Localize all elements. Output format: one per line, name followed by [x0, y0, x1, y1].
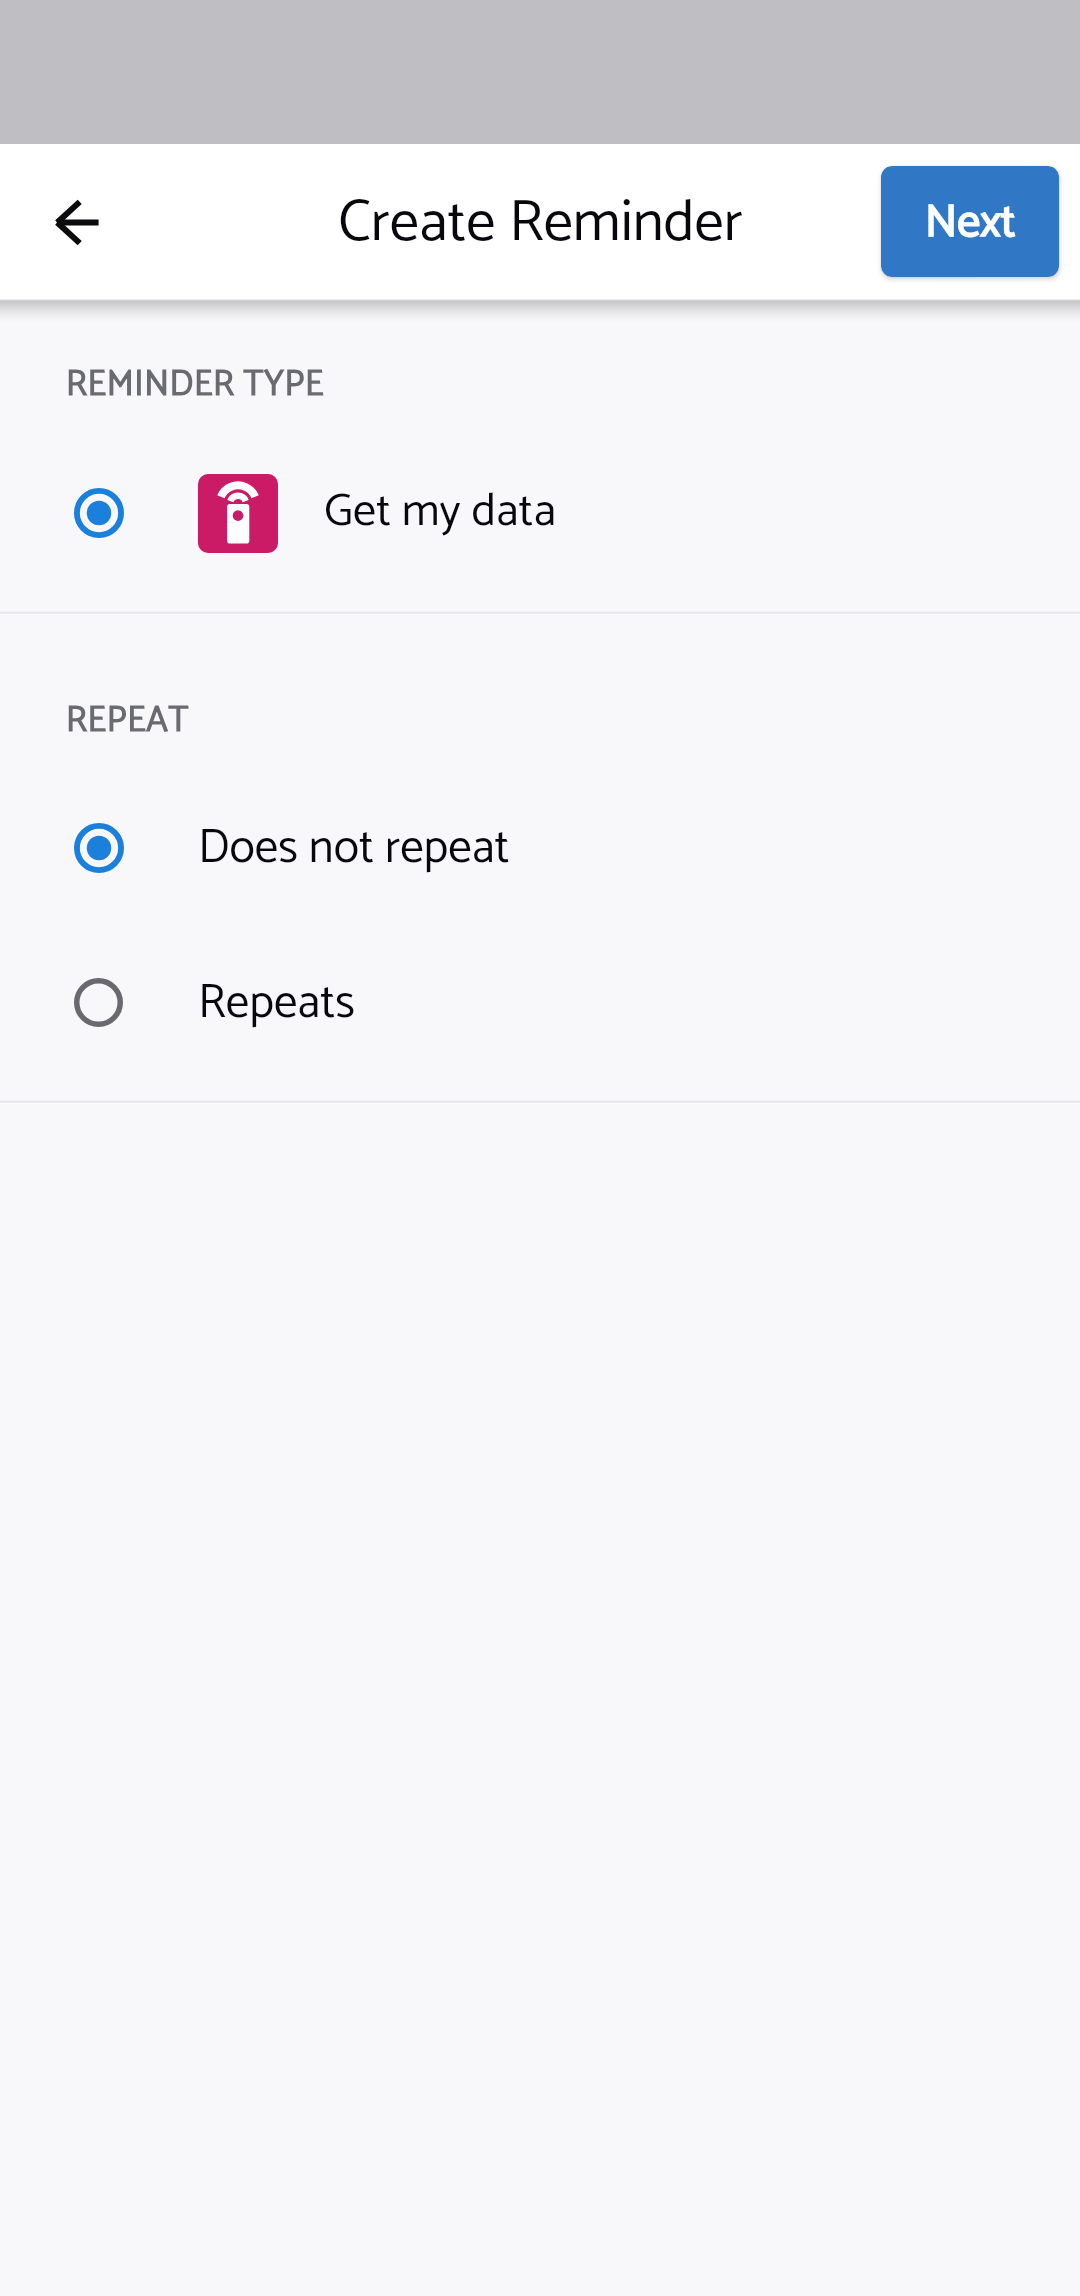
- button[interactable]: Back: [29, 174, 125, 270]
- staticText: Does not repeat: [198, 810, 510, 887]
- staticText: Next: [925, 185, 1016, 260]
- staticText: Create Reminder: [338, 176, 743, 272]
- staticText: REPEAT: [66, 692, 189, 750]
- button[interactable]: Next: [881, 166, 1059, 277]
- staticText: REMINDER TYPE: [66, 356, 325, 414]
- staticText: Repeats: [198, 965, 356, 1042]
- staticText: Get my data: [324, 474, 556, 550]
- button[interactable]: Get my data: [0, 442, 1080, 583]
- button[interactable]: Repeats: [0, 925, 1080, 1080]
- button[interactable]: Does not repeat: [0, 770, 1080, 925]
